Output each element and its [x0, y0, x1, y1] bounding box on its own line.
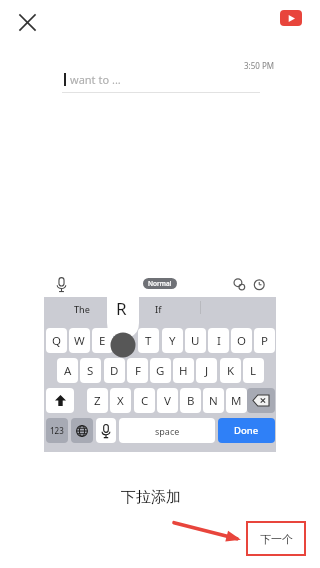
staticText: H [179, 363, 188, 379]
staticText: If [155, 303, 162, 315]
button[interactable]: 123 [46, 418, 68, 443]
button[interactable]: A [57, 358, 78, 383]
staticText: E [99, 333, 106, 349]
button[interactable]: Normal [143, 278, 177, 289]
button[interactable]: B [180, 388, 201, 413]
button[interactable]: Z [87, 388, 108, 413]
button[interactable]: Stickers [232, 277, 246, 291]
button[interactable]: 下一个 [246, 521, 306, 556]
staticText: 123 [50, 425, 64, 436]
button[interactable]: Backspace [247, 388, 275, 413]
staticText: T [145, 333, 152, 349]
staticText: C [141, 393, 149, 409]
staticText: want to ... [70, 72, 121, 87]
button[interactable]: Y [162, 328, 183, 353]
button[interactable]: Change keyboard language [71, 418, 93, 443]
staticText: B [187, 393, 195, 409]
staticText: N [209, 393, 218, 409]
staticText: M [231, 393, 242, 409]
button[interactable]: T [138, 328, 159, 353]
button[interactable]: V [157, 388, 178, 413]
button[interactable]: U [185, 328, 206, 353]
button[interactable]: Voice input [53, 276, 69, 292]
button[interactable]: Q [46, 328, 67, 353]
button[interactable]: S [80, 358, 101, 383]
staticText: O [237, 333, 246, 349]
staticText: S [87, 363, 94, 379]
staticText: Done [234, 424, 259, 437]
staticText: 3:50 PM [244, 60, 275, 71]
button[interactable]: E [92, 328, 113, 353]
button[interactable]: P [254, 328, 275, 353]
button[interactable]: F [127, 358, 148, 383]
staticText: X [117, 393, 124, 409]
button[interactable]: space [119, 418, 215, 443]
button[interactable]: X [110, 388, 131, 413]
button[interactable]: Voice typing [96, 418, 116, 443]
staticText: The [74, 303, 90, 315]
staticText: D [110, 363, 119, 379]
button[interactable]: L [243, 358, 264, 383]
staticText: L [250, 363, 257, 379]
staticText: Normal [148, 279, 172, 288]
button[interactable]: K [220, 358, 241, 383]
button[interactable]: Recent [252, 277, 266, 291]
button[interactable]: I [208, 328, 229, 353]
button[interactable]: G [150, 358, 171, 383]
staticText: U [191, 333, 200, 349]
staticText: W [74, 333, 85, 349]
staticText: P [261, 333, 268, 349]
button[interactable]: Close [13, 8, 41, 36]
button[interactable]: H [173, 358, 194, 383]
staticText: F [135, 363, 141, 379]
staticText: 下拉添加 [121, 488, 181, 507]
staticText: Y [169, 333, 176, 349]
button[interactable]: M [226, 388, 247, 413]
button[interactable]: W [69, 328, 90, 353]
staticText: I [217, 333, 221, 349]
button[interactable]: N [203, 388, 224, 413]
button[interactable]: D [104, 358, 125, 383]
staticText: R [116, 297, 127, 320]
staticText: Q [52, 333, 61, 349]
staticText: K [227, 363, 235, 379]
staticText: V [164, 393, 171, 409]
button[interactable]: J [196, 358, 217, 383]
button[interactable]: O [231, 328, 252, 353]
button[interactable]: YouTube [280, 10, 302, 26]
button[interactable]: Done [218, 418, 275, 443]
staticText: G [156, 363, 165, 379]
staticText: Z [94, 393, 101, 409]
staticText: space [155, 425, 180, 437]
button[interactable]: C [134, 388, 155, 413]
staticText: J [205, 363, 209, 379]
staticText: A [64, 363, 72, 379]
staticText: 下一个 [260, 532, 293, 546]
button[interactable]: Shift [46, 388, 74, 413]
